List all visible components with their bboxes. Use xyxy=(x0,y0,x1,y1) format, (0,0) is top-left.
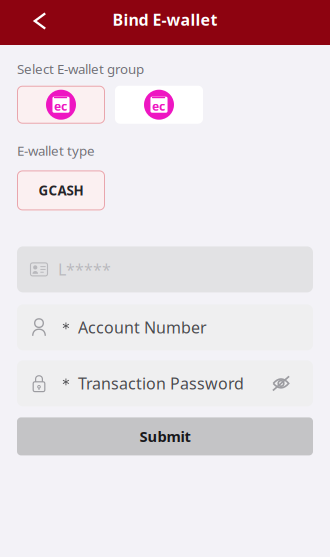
button[interactable]: E-wallet group option 2 xyxy=(115,86,203,124)
staticText: L***** xyxy=(58,259,111,280)
staticText: ec xyxy=(152,98,165,114)
staticText: Bind E-wallet xyxy=(112,9,217,30)
staticText: E-wallet type xyxy=(17,142,95,159)
staticText: Select E-wallet group xyxy=(17,60,144,78)
staticText: GCASH xyxy=(38,182,83,199)
button[interactable]: Back xyxy=(0,0,58,47)
button[interactable]: E-wallet group option 1, selected xyxy=(17,86,105,124)
button[interactable]: Show password xyxy=(266,368,296,398)
button[interactable]: GCASH xyxy=(17,170,105,210)
staticText: ＊ Transaction Password xyxy=(58,373,244,394)
button[interactable]: ＊ Account Number xyxy=(17,304,313,350)
staticText: ec xyxy=(54,98,67,114)
staticText: Submit xyxy=(139,427,190,446)
staticText: ＊ Account Number xyxy=(58,317,207,338)
button[interactable]: Submit xyxy=(17,417,313,455)
